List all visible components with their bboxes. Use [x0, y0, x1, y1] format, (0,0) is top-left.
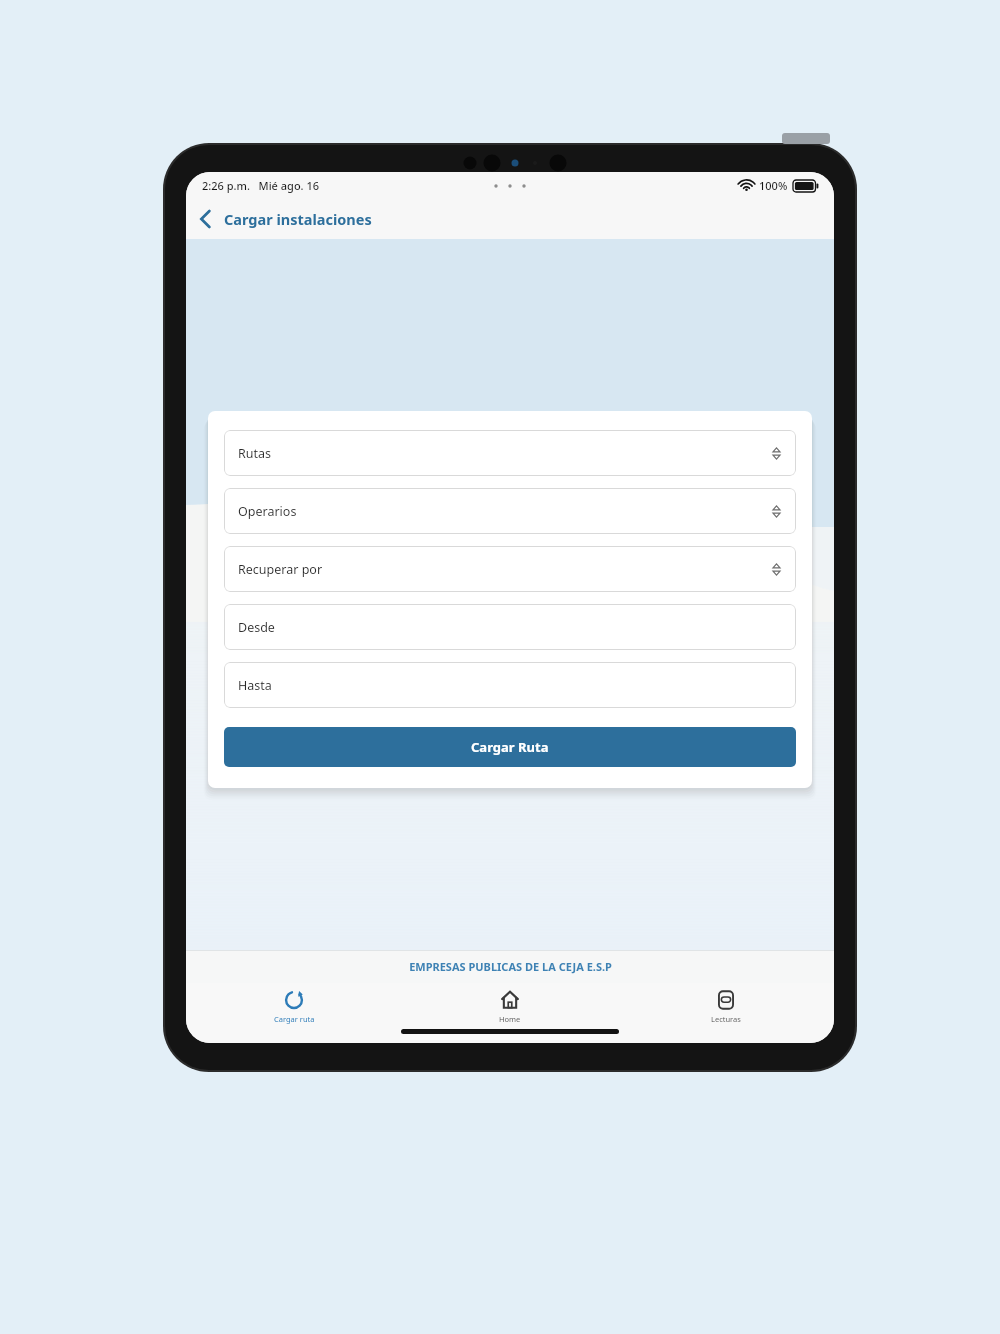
- staticText: Lecturas: [711, 1014, 741, 1024]
- button[interactable]: Recuperar por: [224, 546, 796, 592]
- staticText: Rutas: [238, 445, 771, 462]
- button[interactable]: Desde: [224, 604, 796, 650]
- button[interactable]: Rutas: [224, 430, 796, 476]
- button[interactable]: Cargar ruta: [219, 983, 369, 1029]
- button[interactable]: Operarios: [224, 488, 796, 534]
- button[interactable]: Cargar instalaciones: [224, 209, 372, 229]
- staticText: Recuperar por: [238, 561, 771, 578]
- staticText: Hasta: [238, 677, 272, 694]
- button[interactable]: Home: [435, 983, 585, 1029]
- staticText: Operarios: [238, 503, 771, 520]
- staticText: EMPRESAS PUBLICAS DE LA CEJA E.S.P: [409, 959, 612, 974]
- staticText: Desde: [238, 619, 275, 636]
- button[interactable]: Lecturas: [651, 983, 801, 1029]
- staticText: Cargar Ruta: [471, 738, 549, 756]
- staticText: 100%: [759, 178, 788, 193]
- button[interactable]: Back: [186, 199, 224, 239]
- staticText: Cargar ruta: [274, 1014, 315, 1024]
- staticText: 2:26 p.m. Mié ago. 16: [202, 178, 320, 193]
- button[interactable]: Hasta: [224, 662, 796, 708]
- button[interactable]: Cargar Ruta: [224, 727, 796, 767]
- staticText: Home: [499, 1014, 521, 1024]
